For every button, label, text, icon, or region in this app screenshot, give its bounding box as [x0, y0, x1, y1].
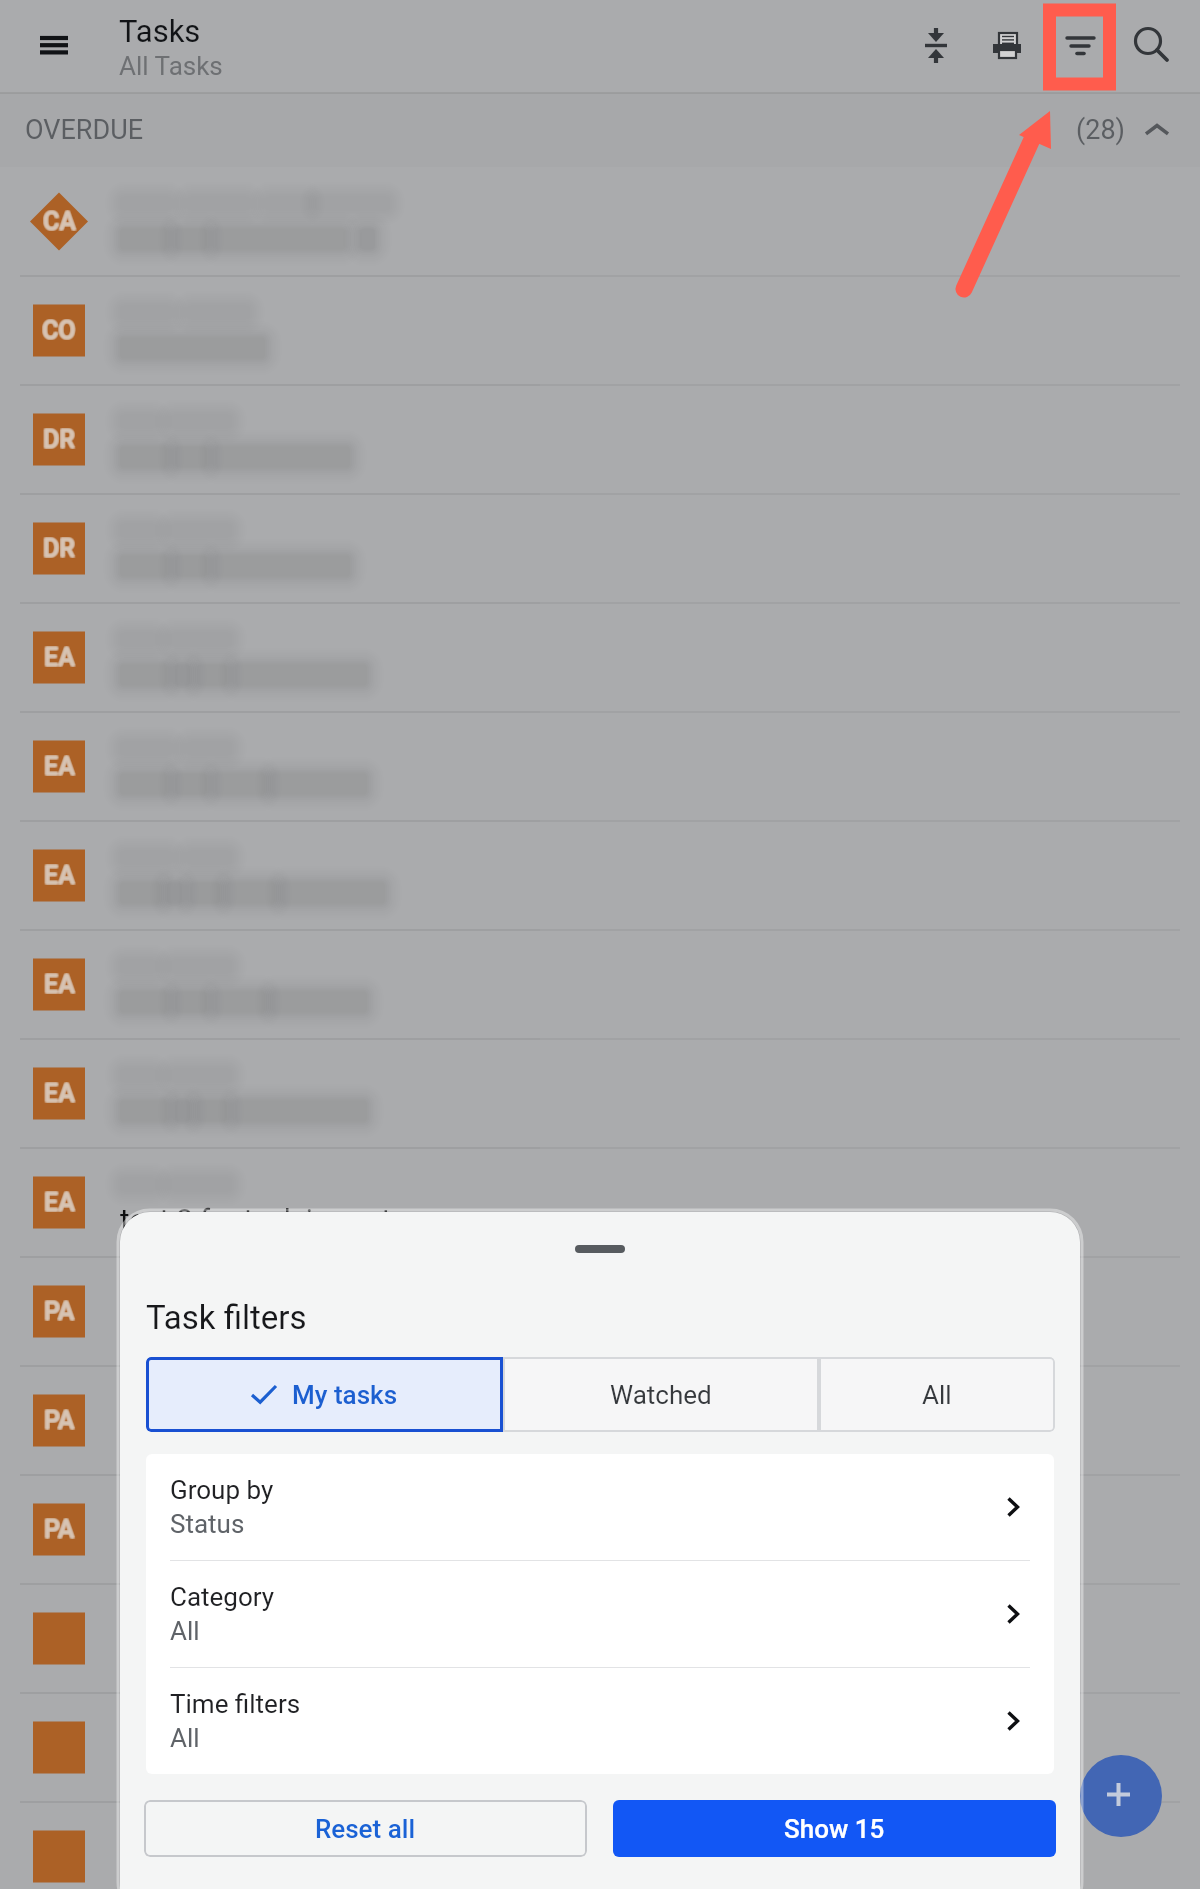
staticText: All — [922, 1380, 952, 1410]
staticText: PA — [44, 1406, 75, 1435]
staticText: Reset all — [315, 1814, 416, 1844]
button[interactable] — [0, 1802, 1200, 1889]
staticText: EA — [43, 1079, 74, 1108]
staticText: EA — [43, 1080, 74, 1109]
staticText: CA — [42, 208, 75, 237]
button[interactable]: Filter — [1044, 0, 1116, 93]
staticText: EA — [43, 1188, 74, 1217]
staticText: Show 15 — [784, 1814, 885, 1844]
staticText: PA — [44, 1515, 75, 1544]
button[interactable]: EA — [0, 1039, 1200, 1148]
staticText: Time filters — [170, 1689, 301, 1719]
staticText: EA — [44, 861, 75, 890]
staticText: EA — [44, 862, 75, 891]
staticText: DR — [42, 424, 74, 453]
staticText: EA — [43, 861, 74, 890]
button[interactable]: EA — [0, 712, 1200, 821]
button[interactable]: Group by — [146, 1454, 1054, 1560]
staticText: DR — [43, 535, 75, 564]
staticText: EA — [45, 969, 76, 998]
staticText: EA — [45, 1080, 76, 1109]
button[interactable]: My tasks — [146, 1357, 503, 1432]
staticText: EA — [43, 970, 74, 999]
staticText: PA — [43, 1298, 74, 1327]
staticText: test 2 for task importer — [120, 1203, 417, 1237]
staticText: EA — [44, 1189, 75, 1218]
staticText: Group by — [170, 1475, 274, 1505]
staticText: DR — [42, 535, 74, 564]
staticText: PA — [44, 1405, 75, 1434]
staticText: CO — [42, 315, 76, 344]
staticText: EA — [44, 752, 75, 781]
button[interactable]: Category — [146, 1561, 1054, 1667]
button[interactable]: Open navigation menu — [18, 0, 90, 93]
staticText: DR — [44, 534, 76, 563]
staticText: CO — [42, 316, 76, 345]
staticText: Status — [170, 1509, 245, 1539]
staticText: EA — [45, 971, 76, 1000]
button[interactable]: Time filters — [146, 1668, 1054, 1774]
staticText: Task filters — [146, 1298, 307, 1337]
button[interactable]: EA — [0, 821, 1200, 930]
button[interactable]: EA — [0, 930, 1200, 1039]
staticText: EA — [44, 643, 75, 672]
button[interactable]: All — [819, 1357, 1055, 1432]
button[interactable]: PA — [0, 1475, 1200, 1584]
staticText: CA — [43, 206, 76, 235]
staticText: PA — [45, 1405, 76, 1434]
staticText: EA — [44, 1079, 75, 1108]
staticText: EA — [43, 1078, 74, 1107]
staticText: PA — [45, 1297, 76, 1326]
button[interactable]: PA — [0, 1366, 1200, 1475]
staticText: DR — [42, 533, 74, 562]
button[interactable]: CA — [0, 167, 1200, 276]
staticText: EA — [44, 971, 75, 1000]
button[interactable]: DR — [0, 494, 1200, 603]
staticText: EA — [45, 751, 76, 780]
button[interactable]: Print — [971, 0, 1043, 93]
staticText: CO — [43, 316, 77, 345]
button[interactable]: CO — [0, 276, 1200, 385]
staticText: CA — [44, 208, 77, 237]
button[interactable]: PA — [0, 1257, 1200, 1366]
staticText: PA — [45, 1407, 76, 1436]
staticText: All — [170, 1616, 200, 1646]
staticText: All Tasks — [119, 51, 223, 81]
staticText: EA — [43, 752, 74, 781]
staticText: DR — [43, 425, 75, 454]
staticText: EA — [44, 860, 75, 889]
staticText: CO — [41, 317, 75, 346]
staticText: EA — [44, 1188, 75, 1217]
staticText: EA — [45, 1187, 76, 1216]
button[interactable]: Search — [1115, 0, 1187, 93]
staticText: DR — [43, 533, 75, 562]
button[interactable]: Show 15 — [613, 1800, 1056, 1857]
staticText: EA — [44, 753, 75, 782]
staticText: PA — [44, 1516, 75, 1545]
staticText: PA — [45, 1298, 76, 1327]
button[interactable]: Reset all — [144, 1800, 587, 1857]
staticText: DR — [43, 534, 75, 563]
staticText: CA — [43, 208, 76, 237]
staticText: EA — [45, 862, 76, 891]
staticText: DR — [44, 533, 76, 562]
staticText: PA — [44, 1407, 75, 1436]
button[interactable]: EA — [0, 603, 1200, 712]
staticText: EA — [45, 1079, 76, 1108]
button[interactable] — [0, 1693, 1200, 1802]
button[interactable] — [0, 1584, 1200, 1693]
staticText: DR — [42, 425, 74, 454]
button[interactable]: Collapse all — [900, 0, 972, 93]
button[interactable]: Watched — [503, 1357, 819, 1432]
button[interactable]: OVERDUE — [25, 93, 1168, 167]
staticText: PA — [45, 1516, 76, 1545]
button[interactable]: EA — [0, 1148, 1200, 1257]
staticText: PA — [43, 1515, 74, 1544]
button[interactable]: Add task — [1080, 1755, 1162, 1837]
staticText: CA — [43, 207, 76, 236]
staticText: CO — [41, 315, 75, 344]
staticText: DR — [43, 426, 75, 455]
button[interactable]: DR — [0, 385, 1200, 494]
staticText: EA — [45, 860, 76, 889]
staticText: PA — [44, 1296, 75, 1325]
